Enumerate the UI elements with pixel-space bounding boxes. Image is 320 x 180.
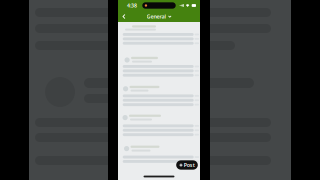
staticText: General xyxy=(147,13,167,20)
button[interactable]: Back xyxy=(119,12,128,21)
staticText: Post xyxy=(184,161,195,169)
button[interactable]: General xyxy=(145,11,173,22)
button[interactable]: Post xyxy=(176,160,198,170)
staticText: 4:38 xyxy=(127,2,137,9)
